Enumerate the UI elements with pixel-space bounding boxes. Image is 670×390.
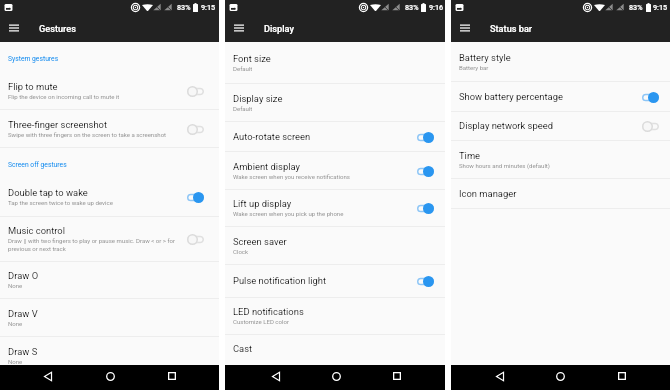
staticText: None [8,320,23,327]
button[interactable]: Time [451,141,670,179]
staticText: Flip the device on incoming call to mute… [8,93,120,100]
staticText: Cast [233,343,253,354]
button[interactable]: Auto-rotate screen [225,122,445,152]
staticText: 83% [629,3,643,11]
button[interactable]: Back [38,366,58,386]
staticText: Draw V [8,308,38,319]
staticText: Draw O [8,270,39,281]
staticText: Ambient display [233,161,300,172]
staticText: Swipe with three fingers on the screen t… [8,131,167,138]
staticText: 9:15 [201,3,216,11]
button[interactable]: Font size [225,42,445,84]
staticText: LED notifications [233,306,304,317]
staticText: Screen off gestures [8,161,67,169]
staticText: Display [264,23,294,34]
staticText: System gestures [8,55,59,63]
staticText: Auto-rotate screen [233,131,311,142]
staticText: Display network speed [459,120,553,131]
button[interactable]: Open navigation menu [225,14,253,42]
staticText: Display size [233,93,283,104]
staticText: Font size [233,53,271,64]
button[interactable]: Lift up display [225,190,445,227]
button[interactable]: Double tap to wake [0,178,219,217]
staticText: Gestures [39,23,76,34]
staticText: 83% [405,3,419,11]
staticText: Show battery percentage [459,91,563,102]
staticText: Pulse notification light [233,275,326,286]
button[interactable]: Back [490,366,510,386]
button[interactable]: Home [326,366,346,386]
staticText: Customize LED color [233,318,289,325]
staticText: Clock [233,248,249,255]
staticText: Time [459,150,481,161]
staticText: Battery bar [459,64,489,71]
staticText: Three-finger screenshot [8,119,108,130]
staticText: None [8,282,23,289]
button[interactable]: Three-finger screenshot [0,110,219,148]
staticText: 9:15 [653,3,668,11]
staticText: Icon manager [459,188,517,199]
button[interactable]: Display network speed [451,112,670,141]
button[interactable]: Icon manager [451,179,670,209]
button[interactable]: Home [550,366,570,386]
staticText: 9:16 [429,3,444,11]
staticText: Draw ‖ with two fingers to play or pause… [8,237,187,252]
button[interactable]: LED notifications [225,298,445,335]
staticText: Wake screen when you pick up the phone [233,210,344,217]
staticText: None [8,358,23,365]
button[interactable]: Open navigation menu [451,14,479,42]
button[interactable]: Draw V [0,299,219,337]
staticText: Wake screen when you receive notificatio… [233,173,350,180]
staticText: Lift up display [233,198,292,209]
staticText: Draw S [8,346,38,357]
staticText: Status bar [490,23,533,34]
button[interactable]: Show battery percentage [451,82,670,112]
button[interactable]: Pulse notification light [225,265,445,298]
button[interactable]: Home [100,366,120,386]
button[interactable]: Cast [225,335,445,364]
staticText: Default [233,65,253,72]
staticText: Music control [8,225,66,236]
button[interactable]: Recent apps [612,366,632,386]
button[interactable]: Back [266,366,286,386]
staticText: Battery style [459,52,511,63]
button[interactable]: Screen saver [225,227,445,265]
staticText: Tap the screen twice to wake up device [8,199,113,206]
button[interactable]: Ambient display [225,152,445,190]
staticText: Flip to mute [8,81,58,92]
staticText: Screen saver [233,236,287,247]
button[interactable]: Music control [0,217,219,262]
button[interactable]: Battery style [451,42,670,82]
button[interactable]: Open navigation menu [0,14,28,42]
staticText: Default [233,105,253,112]
button[interactable]: Flip to mute [0,72,219,110]
staticText: Double tap to wake [8,187,88,198]
button[interactable]: Display size [225,84,445,122]
button[interactable]: Recent apps [387,366,407,386]
staticText: 83% [177,3,191,11]
button[interactable]: Draw S [0,337,219,365]
staticText: Show hours and minutes (default) [459,162,550,169]
button[interactable]: Recent apps [162,366,182,386]
button[interactable]: Draw O [0,262,219,299]
